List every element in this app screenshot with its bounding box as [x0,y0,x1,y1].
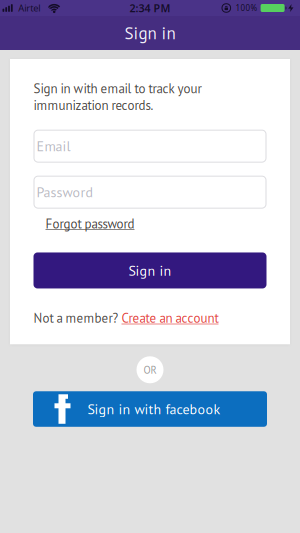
staticText: Sign in [128,261,171,279]
staticText: 2:34 PM [129,1,170,15]
staticText: OR [143,363,156,377]
staticText: Email [36,137,70,155]
button[interactable]: Create an account [121,309,218,326]
staticText: Sign in [124,22,175,44]
button[interactable]: Sign in [33,252,266,288]
staticText: Not a member? [33,309,121,326]
staticText: Password [36,183,93,201]
staticText: Sign in with facebook [87,400,220,418]
staticText: Airtel [18,2,40,14]
staticText: Forgot password [45,215,134,232]
staticText: Sign in with email to track your immuniz… [33,80,201,114]
staticText: Create an account [121,309,218,326]
staticText: 100% [236,3,258,13]
button[interactable]: Forgot password [33,209,134,232]
button[interactable]: Sign in with facebook [33,391,267,427]
